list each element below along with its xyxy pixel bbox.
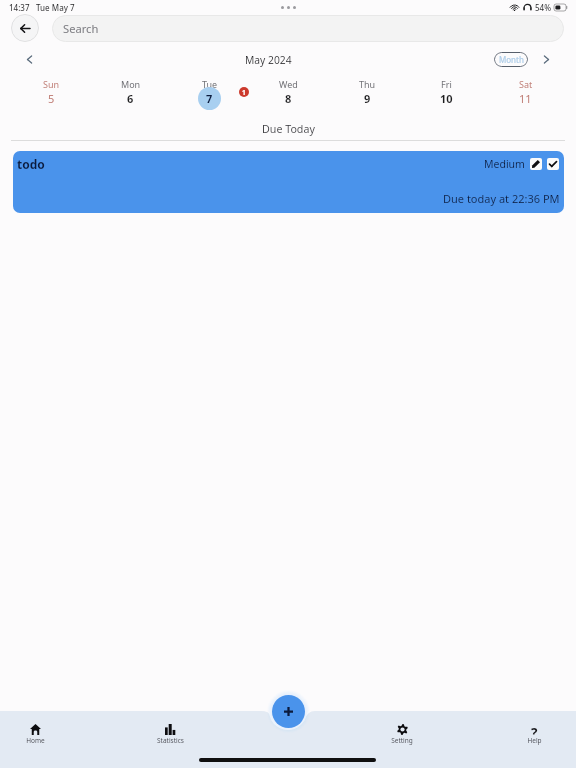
button[interactable]: Fri xyxy=(407,78,486,118)
staticText: 6 xyxy=(127,91,134,106)
staticText: 14:37 xyxy=(9,2,30,13)
button[interactable]: Tue xyxy=(170,78,249,118)
button[interactable]: Mon xyxy=(91,78,170,118)
staticText: 1 xyxy=(242,88,246,97)
staticText: Tue May 7 xyxy=(36,2,75,13)
button[interactable]: Back xyxy=(11,14,39,42)
staticText: Search xyxy=(63,21,99,36)
staticText: 5 xyxy=(48,91,55,106)
button[interactable]: Previous month xyxy=(19,49,40,70)
button[interactable]: Edit xyxy=(530,158,542,170)
staticText: Mon xyxy=(121,78,141,90)
staticText: 8 xyxy=(285,91,292,106)
button[interactable]: Setting xyxy=(372,711,432,768)
staticText: Tue xyxy=(202,78,218,90)
staticText: Medium xyxy=(484,157,525,171)
button[interactable]: ? xyxy=(504,711,564,768)
staticText: Home xyxy=(26,736,45,745)
staticText: Due today at 22:36 PM xyxy=(443,191,560,206)
button[interactable]: Search xyxy=(52,15,564,42)
button[interactable]: Wed xyxy=(249,78,328,118)
button[interactable]: Sat xyxy=(486,78,565,118)
button[interactable]: todo xyxy=(13,151,564,213)
staticText: Sun xyxy=(43,78,60,90)
staticText: Thu xyxy=(359,78,376,90)
staticText: Month xyxy=(499,54,524,65)
staticText: todo xyxy=(17,156,45,172)
staticText: Fri xyxy=(441,78,452,90)
staticText: 9 xyxy=(364,91,371,106)
button[interactable]: Next month xyxy=(536,49,557,70)
staticText: Sat xyxy=(519,78,533,90)
button[interactable]: Statistics xyxy=(140,711,200,768)
staticText: Help xyxy=(527,736,542,745)
button[interactable]: Sun xyxy=(11,78,91,118)
staticText: Setting xyxy=(391,736,413,745)
staticText: Due Today xyxy=(262,122,315,137)
staticText: Wed xyxy=(279,78,298,90)
staticText: 11 xyxy=(519,91,532,106)
staticText: May 2024 xyxy=(245,53,292,67)
staticText: 54% xyxy=(535,2,551,13)
button[interactable]: Complete xyxy=(547,158,559,170)
button[interactable]: Thu xyxy=(328,78,407,118)
staticText: ? xyxy=(531,724,538,735)
staticText: Statistics xyxy=(157,736,184,745)
button[interactable]: Home xyxy=(5,711,65,768)
staticText: 7 xyxy=(206,91,213,106)
button[interactable]: Month xyxy=(494,52,528,67)
button[interactable]: Add task xyxy=(272,695,305,728)
staticText: 10 xyxy=(440,91,453,106)
